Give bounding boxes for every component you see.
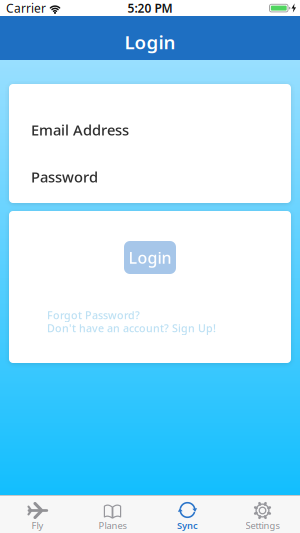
button[interactable]: Don't have an account? Sign Up! xyxy=(47,321,216,335)
staticText: Sync xyxy=(177,519,198,532)
staticText: Carrier xyxy=(6,0,46,16)
staticText: Forgot Password? xyxy=(47,308,140,322)
staticText: 5:20 PM xyxy=(127,0,172,16)
button[interactable]: Password xyxy=(31,167,98,186)
staticText: Don't have an account? Sign Up! xyxy=(47,321,216,335)
button[interactable]: Settings xyxy=(225,495,300,533)
button[interactable]: Fly xyxy=(0,495,75,533)
button[interactable]: Forgot Password? xyxy=(47,308,140,322)
staticText: Email Address xyxy=(31,120,129,139)
button[interactable]: Email Address xyxy=(31,120,129,139)
button[interactable]: Sync xyxy=(150,495,225,533)
staticText: Settings xyxy=(245,519,279,532)
staticText: Login xyxy=(124,30,175,54)
button[interactable]: Login xyxy=(124,241,176,274)
staticText: Fly xyxy=(31,519,43,532)
staticText: Login xyxy=(128,247,171,268)
staticText: Password xyxy=(31,167,98,186)
button[interactable]: Planes xyxy=(75,495,150,533)
staticText: Planes xyxy=(98,519,126,532)
